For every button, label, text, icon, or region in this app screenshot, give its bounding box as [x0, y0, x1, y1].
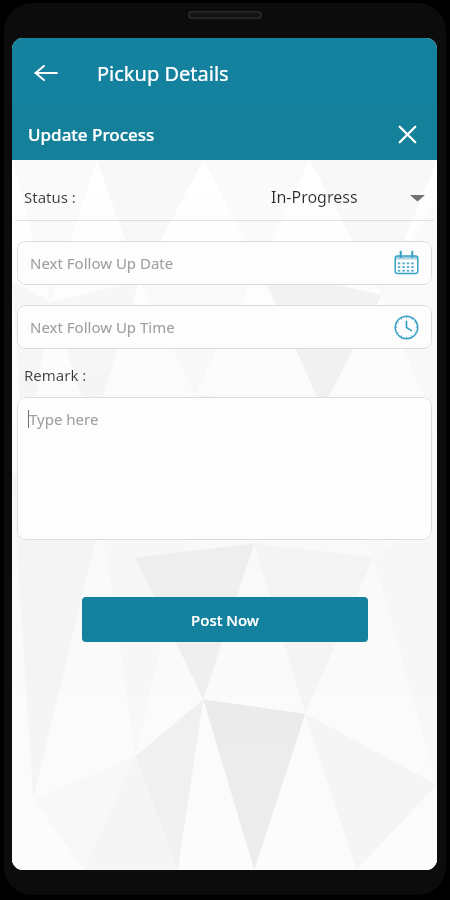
button[interactable]: Type here [17, 397, 432, 540]
staticText: Status : [24, 187, 76, 207]
staticText: Type here [29, 409, 99, 429]
staticText: Pickup Details [97, 60, 229, 87]
staticText: Next Follow Up Date [30, 253, 174, 273]
button[interactable]: Close [388, 115, 426, 153]
staticText: Next Follow Up Time [30, 317, 175, 337]
button[interactable]: Post Now [82, 597, 368, 642]
staticText: Post Now [191, 610, 259, 630]
staticText: Remark : [24, 365, 87, 385]
button[interactable]: Next Follow Up Time [17, 305, 432, 349]
staticText: Update Process [28, 123, 155, 146]
button[interactable]: Status : [12, 174, 437, 220]
button[interactable]: Back [24, 51, 68, 95]
button[interactable]: Next Follow Up Date [17, 241, 432, 285]
staticText: In-Progress [271, 186, 358, 208]
